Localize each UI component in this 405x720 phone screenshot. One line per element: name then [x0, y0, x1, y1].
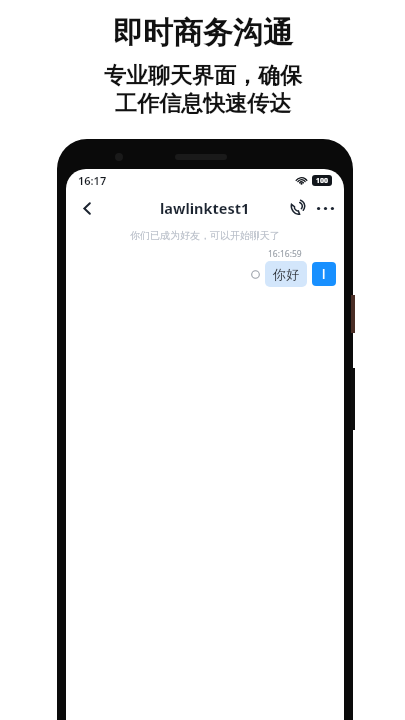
- button[interactable]: l: [312, 262, 336, 286]
- staticText: 你好: [273, 266, 299, 282]
- button[interactable]: More options: [312, 195, 338, 221]
- staticText: 16:16:59: [268, 248, 302, 260]
- staticText: 你们已成为好友，可以开始聊天了: [66, 229, 344, 242]
- staticText: l: [322, 266, 326, 282]
- staticText: lawlinktest1: [160, 198, 250, 218]
- staticText: 100: [316, 176, 329, 186]
- staticText: 工作信息快速传达: [115, 90, 291, 118]
- button[interactable]: Back: [72, 193, 102, 223]
- staticText: 16:17: [78, 173, 107, 188]
- staticText: 即时商务沟通: [113, 14, 293, 52]
- button[interactable]: Call: [284, 195, 310, 221]
- button[interactable]: 你好: [265, 261, 307, 287]
- staticText: 专业聊天界面，确保: [104, 62, 302, 90]
